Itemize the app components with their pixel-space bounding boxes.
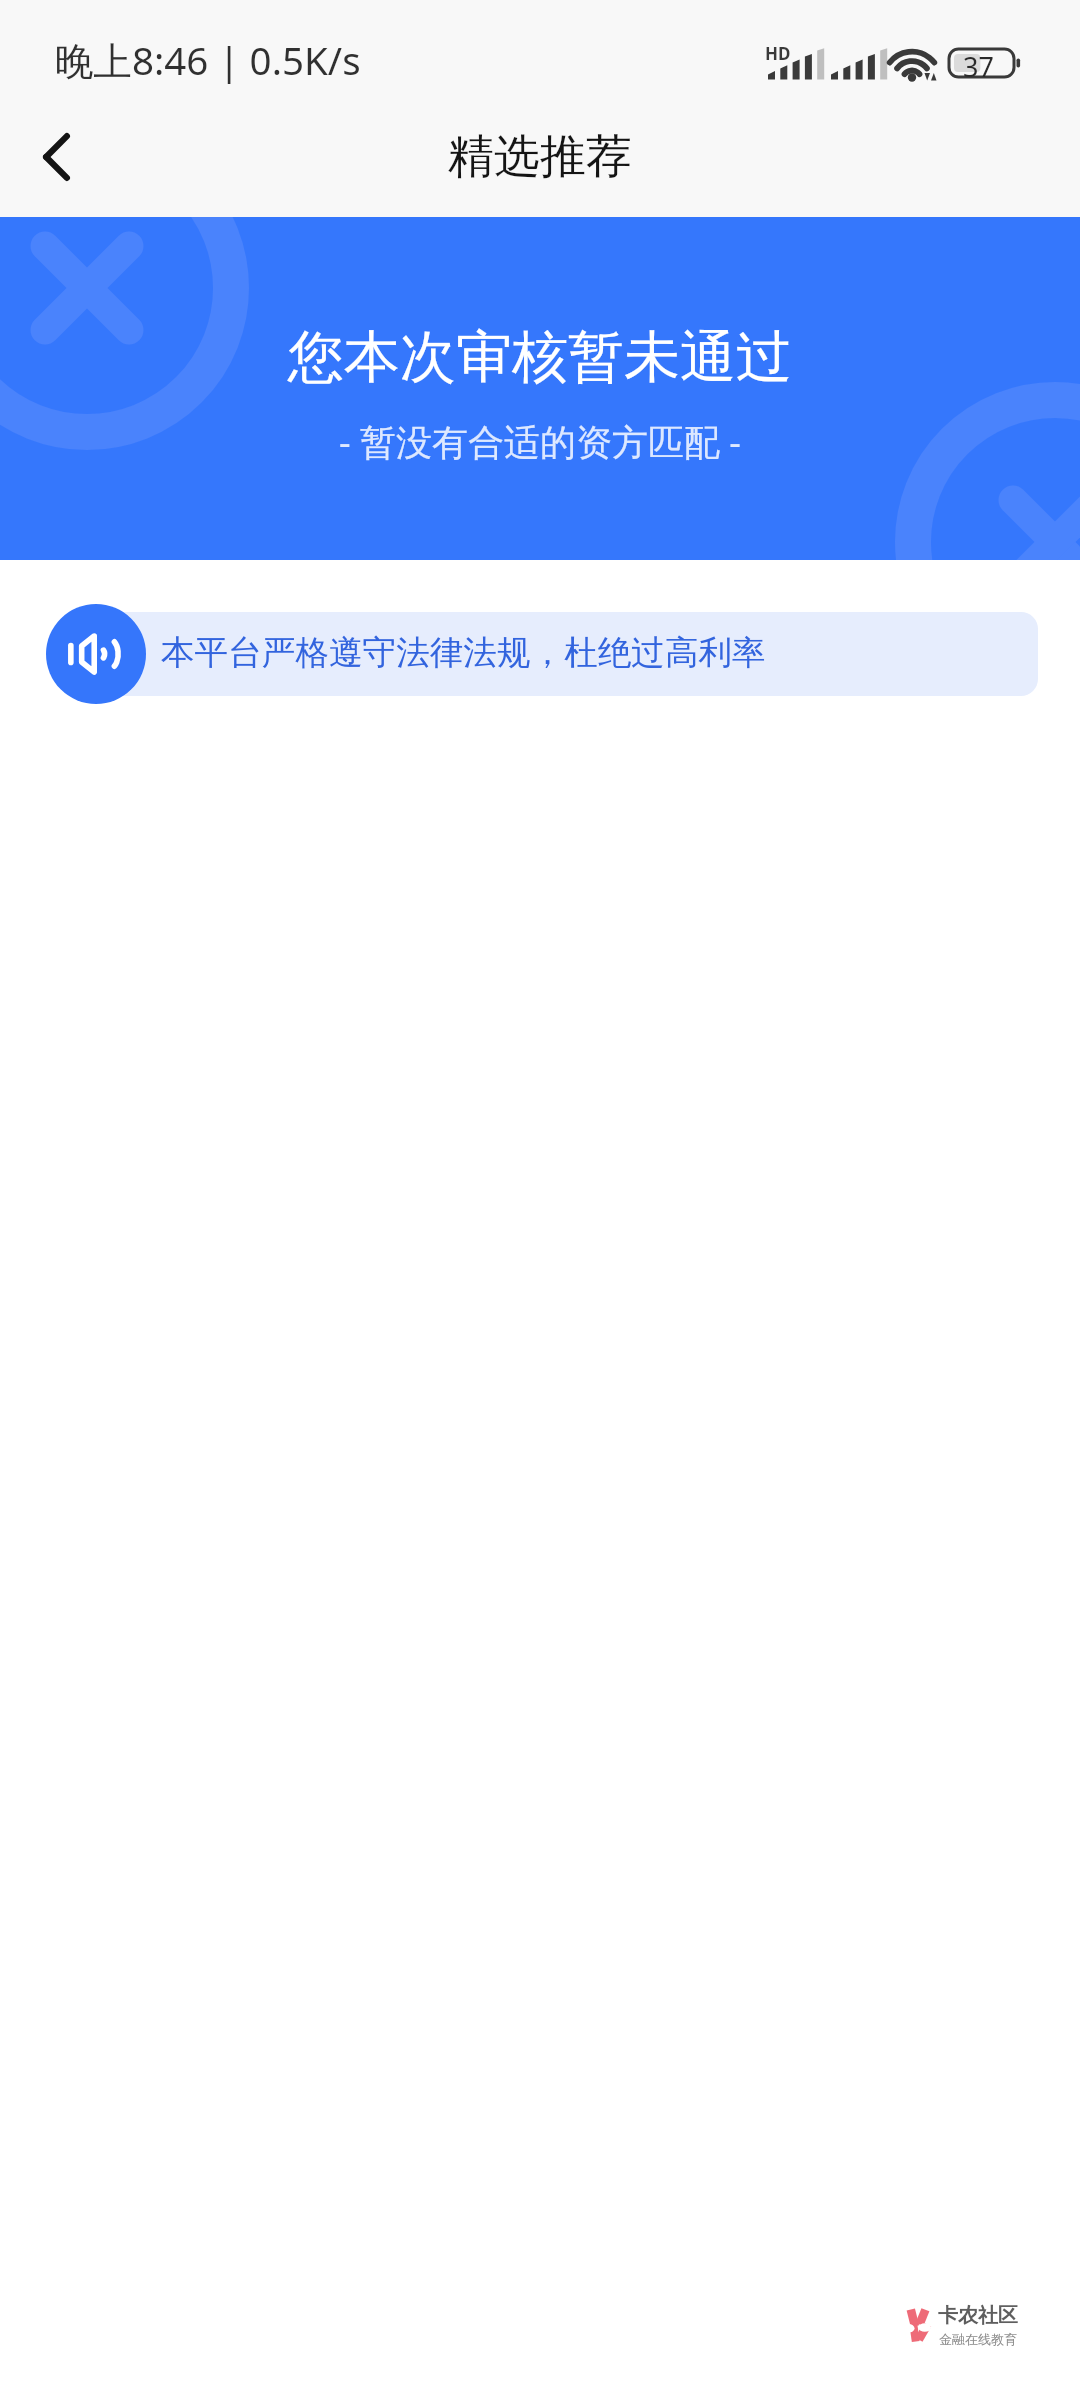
button[interactable]: 本平台严格遵守法律法规，杜绝过高利率 <box>95 612 1038 696</box>
button[interactable]: Back <box>0 105 112 209</box>
staticText: 精选推荐 <box>448 128 632 186</box>
staticText: 37 <box>963 48 994 85</box>
staticText: 本平台严格遵守法律法规，杜绝过高利率 <box>161 632 766 674</box>
staticText: HD <box>765 42 791 65</box>
staticText: 金融在线教育 <box>939 2331 1017 2347</box>
staticText: 卡农社区 <box>938 2303 1018 2328</box>
button[interactable]: Announcement <box>46 604 146 704</box>
staticText: 晚上8:46 | 0.5K/s <box>55 34 361 87</box>
staticText: - 暂没有合适的资方匹配 - <box>0 417 1080 466</box>
staticText: 您本次审核暂未通过 <box>0 322 1080 393</box>
